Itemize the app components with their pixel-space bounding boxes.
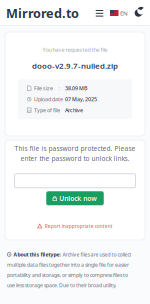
staticText: portability and storage, or simply to co… xyxy=(7,272,128,278)
staticText: dooo-v2.9.7-nulled.zip xyxy=(32,60,118,71)
staticText: Report inappropriate content xyxy=(45,223,113,229)
staticText: Archive files are used to collect xyxy=(62,251,131,258)
staticText: Archive xyxy=(65,106,83,114)
staticText: This file is password protected. Please xyxy=(14,144,135,153)
staticText: You have requested the file xyxy=(42,46,107,53)
staticText: 38.09 MB xyxy=(65,84,87,92)
button[interactable]: Menu xyxy=(94,7,105,18)
staticText: : xyxy=(58,84,59,92)
button[interactable]: Language xyxy=(105,9,133,17)
staticText: Type of file xyxy=(34,106,60,114)
staticText: Unlock now xyxy=(59,194,97,203)
staticText: enter the password to unlock links. xyxy=(20,154,129,163)
button[interactable]: Report inappropriate content xyxy=(37,223,113,229)
staticText: EN xyxy=(120,9,128,17)
button[interactable]: Dark mode xyxy=(133,7,145,19)
staticText: Mirrored.to xyxy=(6,4,79,22)
staticText: 07 May, 2025 xyxy=(65,95,97,103)
staticText: multiple data files together into a sing… xyxy=(7,261,129,268)
staticText: File size xyxy=(34,84,53,92)
button[interactable]: Unlock now xyxy=(46,191,104,205)
staticText: : xyxy=(58,95,59,103)
staticText: : xyxy=(58,106,59,114)
button[interactable]: Mirrored.to xyxy=(6,4,79,22)
staticText: Upload date xyxy=(34,95,63,103)
staticText: use less storage space. Due to their bro… xyxy=(7,282,116,289)
staticText: About this filetype: xyxy=(13,251,60,258)
